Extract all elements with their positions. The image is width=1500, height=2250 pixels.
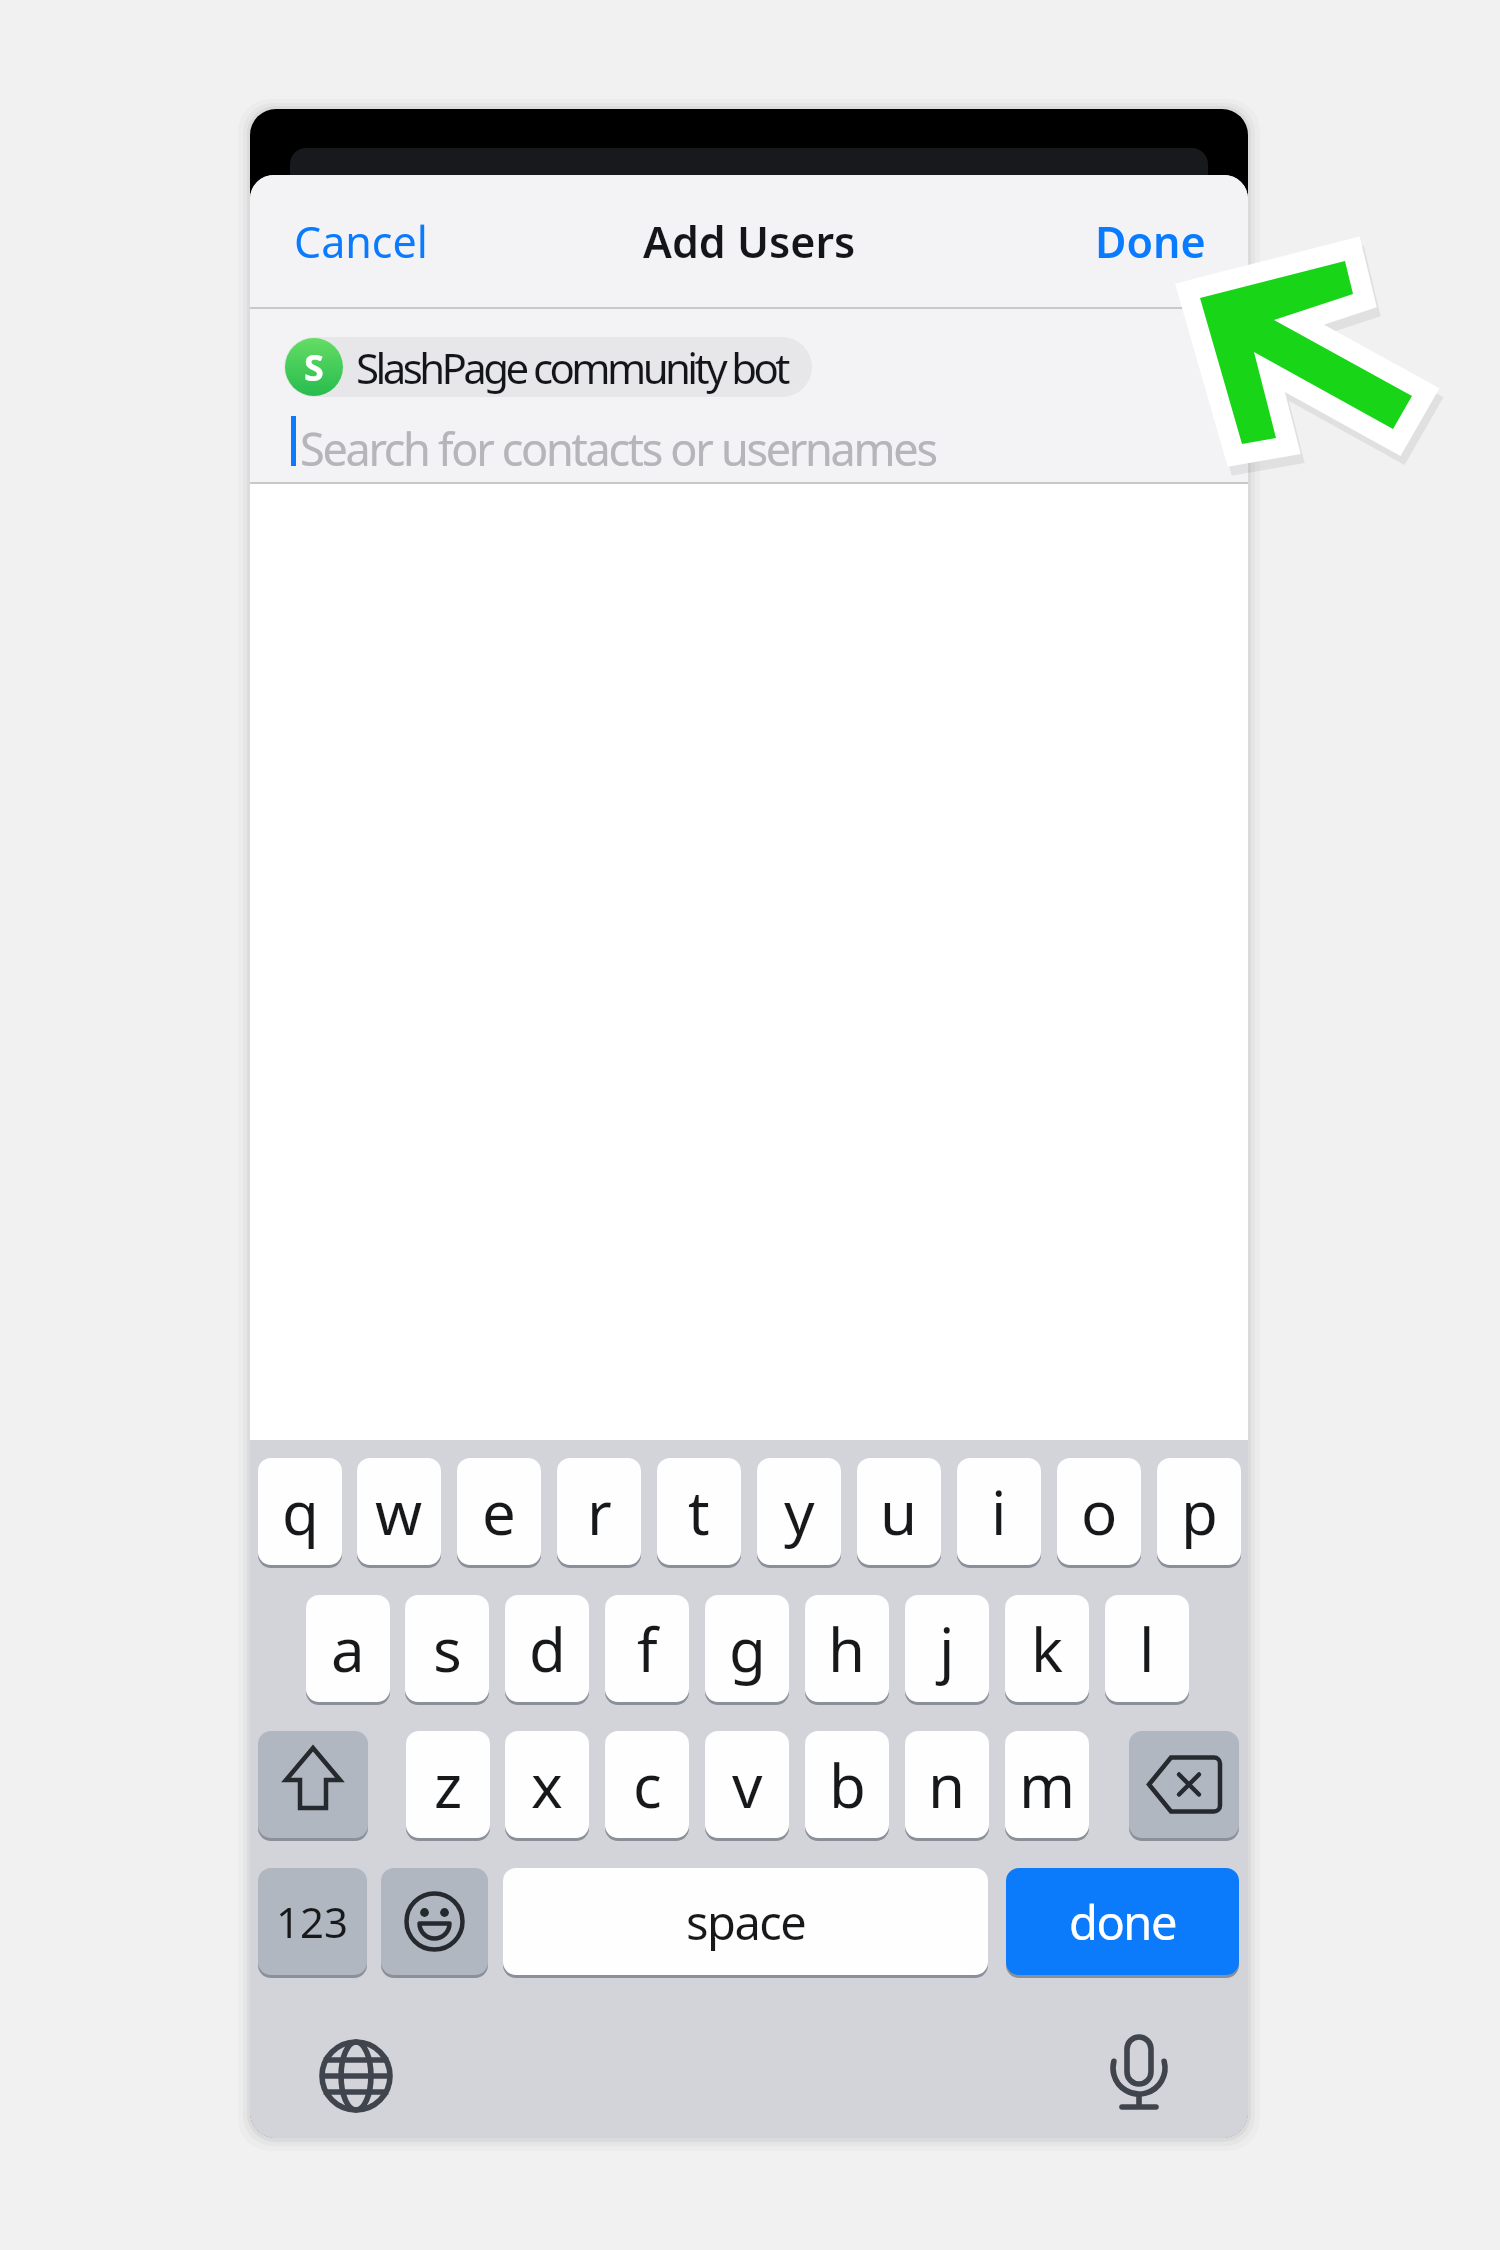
staticText: SlashPage community bot — [356, 339, 787, 396]
button[interactable]: v — [705, 1731, 789, 1838]
button[interactable]: Cancel — [294, 212, 428, 271]
staticText: z — [434, 1744, 463, 1826]
button[interactable]: o — [1057, 1458, 1141, 1565]
button[interactable]: space — [503, 1868, 988, 1975]
staticText: S — [304, 343, 324, 392]
staticText: s — [433, 1608, 462, 1690]
button[interactable]: q — [258, 1458, 342, 1565]
button[interactable]: u — [857, 1458, 941, 1565]
staticText: space — [686, 1890, 806, 1954]
button[interactable]: c — [605, 1731, 689, 1838]
staticText: m — [1019, 1744, 1076, 1826]
button[interactable]: z — [406, 1731, 490, 1838]
button[interactable]: d — [505, 1595, 589, 1702]
button[interactable]: y — [757, 1458, 841, 1565]
button[interactable]: t — [657, 1458, 741, 1565]
staticText: Add Users — [643, 212, 856, 271]
staticText: c — [633, 1744, 662, 1826]
button[interactable] — [258, 1731, 368, 1838]
button[interactable]: j — [905, 1595, 989, 1702]
staticText: v — [732, 1744, 763, 1826]
button[interactable] — [381, 1868, 488, 1975]
button[interactable]: e — [457, 1458, 541, 1565]
staticText: x — [531, 1744, 563, 1826]
staticText: n — [928, 1744, 966, 1826]
staticText: w — [375, 1471, 423, 1553]
button[interactable]: r — [557, 1458, 641, 1565]
button[interactable]: n — [905, 1731, 989, 1838]
button[interactable]: g — [705, 1595, 789, 1702]
staticText: h — [828, 1608, 866, 1690]
button[interactable]: b — [805, 1731, 889, 1838]
staticText: p — [1181, 1471, 1218, 1553]
button[interactable]: i — [957, 1458, 1041, 1565]
button[interactable]: a — [306, 1595, 390, 1702]
button[interactable]: m — [1005, 1731, 1089, 1838]
staticText: Cancel — [294, 212, 428, 271]
staticText: a — [331, 1608, 365, 1690]
staticText: r — [587, 1471, 612, 1553]
staticText: y — [784, 1471, 815, 1553]
button[interactable]: 123 — [258, 1868, 367, 1975]
staticText: u — [880, 1471, 918, 1553]
staticText: g — [729, 1608, 766, 1690]
button[interactable]: done — [1006, 1868, 1239, 1975]
staticText: q — [282, 1471, 319, 1553]
button[interactable] — [1093, 2030, 1185, 2122]
button[interactable] — [310, 2030, 402, 2122]
staticText: e — [482, 1471, 516, 1553]
button[interactable]: p — [1157, 1458, 1241, 1565]
button[interactable]: Done — [1095, 212, 1206, 271]
staticText: Search for contacts or usernames — [300, 418, 936, 479]
staticText: f — [637, 1608, 658, 1690]
staticText: l — [1139, 1608, 1155, 1690]
staticText: t — [688, 1471, 710, 1553]
staticText: k — [1031, 1608, 1064, 1690]
button[interactable]: x — [505, 1731, 589, 1838]
staticText: j — [939, 1608, 955, 1690]
button[interactable]: l — [1105, 1595, 1189, 1702]
button[interactable]: S — [284, 337, 812, 397]
button[interactable]: k — [1005, 1595, 1089, 1702]
staticText: o — [1081, 1471, 1118, 1553]
staticText: b — [829, 1744, 866, 1826]
staticText: Done — [1095, 212, 1206, 271]
staticText: d — [529, 1608, 566, 1690]
staticText: 123 — [276, 1893, 349, 1950]
staticText: i — [991, 1471, 1007, 1553]
button[interactable]: s — [405, 1595, 489, 1702]
button[interactable]: h — [805, 1595, 889, 1702]
button[interactable] — [1129, 1731, 1239, 1838]
button[interactable]: w — [357, 1458, 441, 1565]
staticText: done — [1069, 1890, 1176, 1954]
button[interactable]: f — [605, 1595, 689, 1702]
